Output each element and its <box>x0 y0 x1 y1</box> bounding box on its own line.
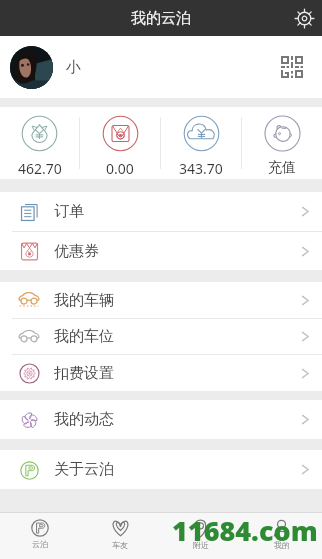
button[interactable]: QR code <box>274 49 310 85</box>
button[interactable]: 小 <box>0 36 322 98</box>
staticText: 小 <box>66 58 81 77</box>
staticText: 云泊 <box>32 539 48 549</box>
button[interactable]: Settings <box>286 0 322 36</box>
staticText: 充值 <box>268 159 296 177</box>
staticText: 车友 <box>112 540 128 550</box>
button[interactable]: 我的动态 <box>0 400 322 439</box>
button[interactable]: 订单 <box>0 192 322 231</box>
button[interactable]: 车友 <box>80 513 160 550</box>
button[interactable]: 462.70 <box>0 109 79 178</box>
button[interactable]: 我的车位 <box>0 319 322 354</box>
staticText: 462.70 <box>18 159 62 178</box>
staticText: 我的云泊 <box>131 9 191 28</box>
button[interactable]: 扣费设置 <box>0 355 322 391</box>
staticText: 我的车位 <box>54 327 114 346</box>
staticText: 我的动态 <box>54 410 114 429</box>
staticText: 0.00 <box>106 159 134 178</box>
button[interactable]: 我的车辆 <box>0 282 322 318</box>
staticText: 我的车辆 <box>54 291 114 310</box>
staticText: 附近 <box>193 540 209 550</box>
staticText: 关于云泊 <box>54 460 114 479</box>
button[interactable]: 云泊 <box>0 513 80 549</box>
button[interactable]: 优惠券 <box>0 232 322 270</box>
staticText: 优惠券 <box>54 242 99 261</box>
staticText: 11684.com <box>172 512 318 549</box>
button[interactable]: 附近 <box>160 513 241 550</box>
staticText: 扣费设置 <box>54 364 114 383</box>
staticText: 343.70 <box>179 159 223 178</box>
staticText: 订单 <box>54 202 84 221</box>
button[interactable]: 关于云泊 <box>0 450 322 489</box>
button[interactable]: 我的 <box>241 513 322 550</box>
staticText: 我的 <box>274 540 290 550</box>
button[interactable]: 0.00 <box>80 109 160 178</box>
button[interactable]: 充值 <box>242 109 322 177</box>
button[interactable]: 343.70 <box>161 109 241 178</box>
